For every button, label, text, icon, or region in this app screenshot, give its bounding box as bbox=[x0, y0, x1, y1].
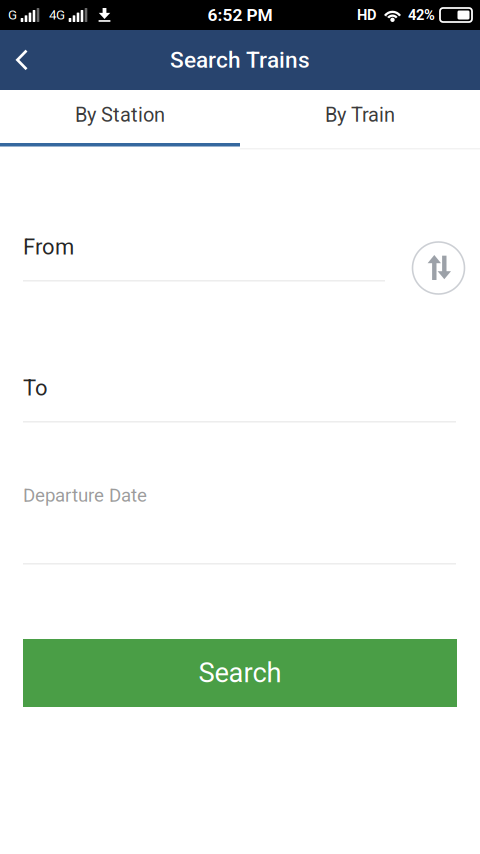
button[interactable]: From bbox=[0, 216, 480, 281]
staticText: 42% bbox=[408, 6, 435, 24]
staticText: Search Trains bbox=[170, 47, 310, 73]
button[interactable]: Back bbox=[0, 30, 44, 90]
button[interactable]: Swap from and to stations bbox=[409, 239, 467, 297]
button[interactable]: Departure Date bbox=[0, 472, 480, 564]
button[interactable]: To bbox=[0, 357, 480, 422]
staticText: G bbox=[8, 7, 17, 23]
staticText: HD bbox=[357, 6, 377, 24]
staticText: Departure Date bbox=[23, 484, 147, 506]
button[interactable]: By Train bbox=[240, 90, 480, 140]
staticText: To bbox=[23, 375, 48, 401]
staticText: From bbox=[23, 234, 74, 260]
staticText: Search bbox=[198, 657, 281, 689]
staticText: By Station bbox=[75, 103, 165, 127]
button[interactable]: Search bbox=[23, 639, 457, 707]
staticText: 4G bbox=[49, 7, 65, 23]
staticText: By Train bbox=[325, 103, 395, 127]
button[interactable]: By Station bbox=[0, 90, 240, 140]
staticText: 6:52 PM bbox=[207, 5, 272, 25]
